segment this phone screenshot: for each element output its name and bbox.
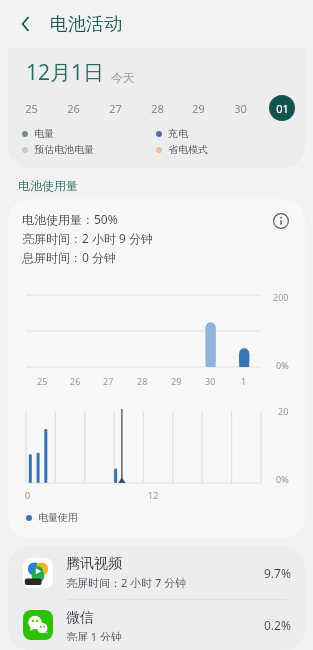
staticText: 27 — [103, 375, 114, 387]
staticText: 29 — [192, 101, 205, 116]
staticText: 电池使用量 — [18, 178, 78, 193]
button[interactable]: 微信 — [8, 600, 305, 650]
staticText: 亮屏时间：2 小时 7 分钟 — [66, 575, 187, 590]
staticText: 亮屏时间：2 小时 9 分钟 — [22, 230, 154, 246]
button[interactable]: 信息 — [271, 211, 291, 231]
staticText: 腾讯视频 — [66, 555, 122, 573]
staticText: 29 — [171, 375, 182, 387]
staticText: 电量 — [34, 127, 54, 140]
button[interactable]: 27 — [102, 95, 128, 121]
staticText: 电池使用量：50% — [22, 211, 118, 227]
staticText: 28 — [137, 375, 148, 387]
staticText: 12 — [148, 489, 159, 501]
button[interactable]: 01 — [269, 95, 295, 121]
staticText: 9.7% — [264, 565, 291, 581]
button[interactable]: 腾讯视频 — [8, 546, 305, 599]
staticText: 20 — [278, 405, 289, 417]
staticText: 息屏时间：0 分钟 — [22, 249, 116, 265]
staticText: 微信 — [66, 609, 94, 627]
button[interactable]: 28 — [144, 95, 170, 121]
staticText: 电量使用 — [38, 511, 78, 524]
button[interactable]: 30 — [227, 95, 253, 121]
staticText: 12月1日 — [26, 58, 105, 87]
staticText: 26 — [70, 375, 81, 387]
staticText: 电池活动 — [50, 13, 122, 36]
staticText: 预估电池电量 — [34, 143, 94, 156]
staticText: 亮屏 1 分钟 — [66, 629, 123, 641]
button[interactable]: 29 — [185, 95, 211, 121]
staticText: 25 — [25, 101, 38, 116]
staticText: 0% — [276, 473, 289, 485]
staticText: 200 — [273, 291, 289, 303]
staticText: 0% — [276, 359, 289, 371]
staticText: 01 — [276, 101, 289, 116]
staticText: 25 — [37, 375, 48, 387]
staticText: 28 — [151, 101, 164, 116]
staticText: 0.2% — [264, 617, 291, 633]
button[interactable]: 26 — [60, 95, 86, 121]
staticText: 27 — [109, 101, 122, 116]
staticText: 充电 — [168, 127, 188, 140]
staticText: 26 — [67, 101, 80, 116]
staticText: 省电模式 — [168, 143, 208, 156]
staticText: 今天 — [111, 70, 135, 85]
staticText: 1 — [241, 375, 247, 387]
button[interactable]: 25 — [18, 95, 44, 121]
staticText: 0 — [25, 489, 31, 501]
staticText: 30 — [205, 375, 216, 387]
staticText: 30 — [234, 101, 247, 116]
button[interactable]: 返回 — [12, 10, 40, 38]
